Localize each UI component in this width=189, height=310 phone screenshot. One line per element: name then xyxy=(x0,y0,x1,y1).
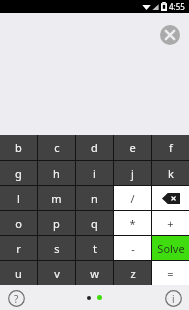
button[interactable]: z xyxy=(114,261,151,285)
button[interactable]: f xyxy=(152,135,189,160)
button[interactable]: t xyxy=(76,236,113,260)
button[interactable]: + xyxy=(152,211,189,235)
staticText: c xyxy=(54,140,60,155)
staticText: k xyxy=(168,166,174,181)
staticText: t xyxy=(93,241,97,256)
button[interactable]: * xyxy=(114,211,151,235)
staticText: ? xyxy=(14,292,19,306)
button[interactable]: e xyxy=(114,135,151,160)
button[interactable]: p xyxy=(38,211,75,235)
staticText: m xyxy=(51,191,62,206)
button[interactable]: q xyxy=(76,211,113,235)
button[interactable]: Close xyxy=(160,25,180,45)
staticText: l xyxy=(17,191,20,206)
button[interactable]: u xyxy=(0,261,37,285)
staticText: j xyxy=(131,166,134,181)
button[interactable]: w xyxy=(76,261,113,285)
button[interactable]: i xyxy=(76,161,113,185)
staticText: * xyxy=(129,216,136,231)
button[interactable]: / xyxy=(114,186,151,210)
staticText: f xyxy=(169,140,173,155)
staticText: b xyxy=(15,140,22,155)
button[interactable]: Backspace xyxy=(152,186,189,210)
button[interactable]: = xyxy=(152,261,189,285)
button[interactable]: Solve xyxy=(152,236,189,260)
staticText: g xyxy=(15,166,22,181)
staticText: 4:55 xyxy=(169,1,185,12)
button[interactable]: r xyxy=(0,236,37,260)
staticText: r xyxy=(16,241,21,256)
staticText: n xyxy=(91,191,98,206)
button[interactable]: l xyxy=(0,186,37,210)
button[interactable]: k xyxy=(152,161,189,185)
button[interactable]: m xyxy=(38,186,75,210)
button[interactable]: - xyxy=(114,236,151,260)
button[interactable]: s xyxy=(38,236,75,260)
button[interactable]: Help xyxy=(5,287,27,309)
staticText: i xyxy=(172,292,175,306)
staticText: u xyxy=(15,266,22,281)
button[interactable]: b xyxy=(0,135,37,160)
staticText: w xyxy=(90,266,99,281)
button[interactable]: j xyxy=(114,161,151,185)
button[interactable]: v xyxy=(38,261,75,285)
staticText: e xyxy=(129,140,136,155)
staticText: z xyxy=(130,266,136,281)
staticText: s xyxy=(54,241,60,256)
staticText: q xyxy=(91,216,98,231)
staticText: - xyxy=(131,241,135,256)
staticText: d xyxy=(91,140,98,155)
button[interactable]: g xyxy=(0,161,37,185)
staticText: / xyxy=(130,191,135,206)
staticText: h xyxy=(53,166,60,181)
staticText: Solve xyxy=(157,241,185,256)
button[interactable]: h xyxy=(38,161,75,185)
staticText: o xyxy=(15,216,22,231)
staticText: p xyxy=(53,216,60,231)
button[interactable]: d xyxy=(76,135,113,160)
staticText: i xyxy=(93,166,96,181)
staticText: = xyxy=(167,266,174,281)
button[interactable]: c xyxy=(38,135,75,160)
staticText: + xyxy=(167,216,174,231)
staticText: v xyxy=(54,266,60,281)
button[interactable]: Info xyxy=(162,287,184,309)
button[interactable]: o xyxy=(0,211,37,235)
button[interactable]: n xyxy=(76,186,113,210)
